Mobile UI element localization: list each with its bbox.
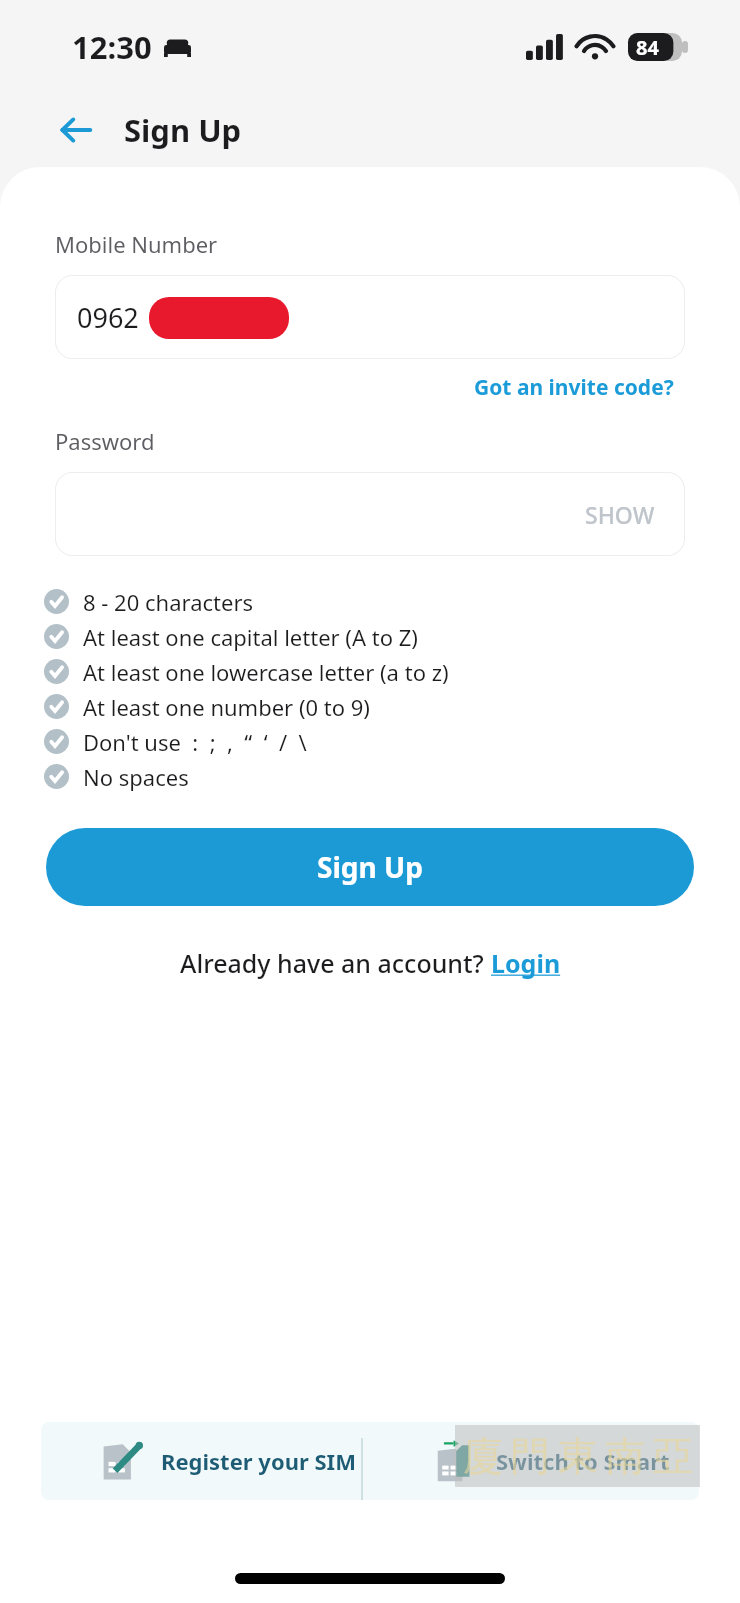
staticText: 0962 xyxy=(77,299,139,336)
staticText: Mobile Number xyxy=(55,229,218,259)
staticText: 84 xyxy=(636,34,659,61)
staticText: 12:30 xyxy=(72,26,152,68)
staticText: At least one lowercase letter (a to z) xyxy=(83,657,449,687)
staticText: Don't use : ; , “ ‘ / \ xyxy=(83,727,307,757)
staticText: SHOW xyxy=(585,499,655,530)
button[interactable]: Register your SIM xyxy=(101,1422,699,1500)
other: Switch to Smart xyxy=(436,1439,480,1483)
staticText: At least one number (0 to 9) xyxy=(83,692,370,722)
button[interactable]: 0962 xyxy=(55,275,685,359)
staticText: 廈 xyxy=(463,1431,503,1481)
staticText: 門 xyxy=(510,1431,550,1481)
button[interactable]: Switch to Smart xyxy=(436,1422,699,1500)
staticText: 8 - 20 characters xyxy=(83,587,254,617)
button[interactable]: SHOW xyxy=(579,493,661,536)
staticText: Register your SIM xyxy=(161,1446,356,1476)
button[interactable]: Got an invite code? xyxy=(474,373,674,402)
staticText: Got an invite code? xyxy=(474,373,674,402)
staticText: Sign Up xyxy=(317,848,423,886)
staticText: Already have an account? xyxy=(180,946,491,980)
staticText: 東 xyxy=(558,1431,598,1481)
staticText: 南 xyxy=(605,1431,645,1481)
staticText: At least one capital letter (A to Z) xyxy=(83,622,418,652)
button[interactable]: SHOW xyxy=(55,472,685,556)
staticText: No spaces xyxy=(83,762,189,792)
staticText: Switch to Smart xyxy=(496,1446,670,1476)
button[interactable]: Login xyxy=(491,946,561,980)
staticText: Password xyxy=(55,426,155,456)
staticText: Login xyxy=(491,946,561,980)
other: Register your SIM xyxy=(101,1439,145,1483)
button[interactable]: Sign Up xyxy=(46,828,694,906)
button[interactable]: Back xyxy=(50,104,102,156)
staticText: Sign Up xyxy=(124,109,242,151)
staticText: 亞 xyxy=(653,1431,693,1481)
